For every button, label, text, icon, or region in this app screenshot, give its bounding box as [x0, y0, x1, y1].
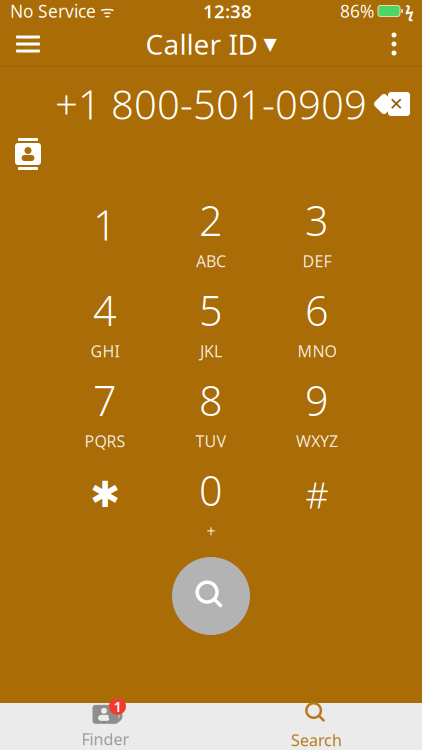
staticText: Finder [81, 728, 129, 750]
staticText: ✕ [389, 94, 404, 114]
button[interactable]: Contacts [0, 131, 56, 177]
button[interactable]: 1 [45, 703, 165, 750]
button[interactable]: 8 [158, 381, 264, 443]
staticText: Caller ID [145, 25, 257, 63]
staticText: No Service [10, 0, 96, 22]
staticText: 1 [93, 197, 117, 252]
staticText: 9 [305, 372, 329, 427]
button[interactable]: Search number [166, 551, 256, 641]
staticText: JKL [200, 340, 222, 361]
staticText: 7 [93, 372, 117, 427]
staticText: # [305, 471, 328, 518]
staticText: 0 [199, 462, 223, 517]
staticText: ▼ [263, 34, 276, 54]
staticText: PQRS [84, 430, 125, 451]
staticText: Search [291, 729, 342, 750]
button[interactable]: 7 [52, 381, 158, 443]
staticText: WXYZ [296, 430, 338, 451]
button[interactable]: Delete [366, 81, 422, 127]
staticText: DEF [302, 250, 331, 271]
button[interactable]: 4 [52, 291, 158, 353]
staticText: + [206, 520, 215, 541]
button[interactable]: 1 [52, 201, 158, 263]
staticText: +1 800-501-0909 [55, 77, 367, 130]
button[interactable]: Search [256, 703, 376, 750]
staticText: 86% [340, 0, 374, 22]
staticText: ᯤ [96, 0, 115, 22]
staticText: 2 [199, 192, 223, 247]
staticText: MNO [297, 340, 336, 361]
button[interactable]: 3 [264, 201, 370, 263]
button[interactable]: Caller ID [135, 22, 286, 66]
staticText: 4 [93, 282, 117, 337]
staticText: 8 [199, 372, 223, 427]
staticText: 1 [113, 697, 121, 716]
staticText: TUV [195, 430, 226, 451]
button[interactable]: More options [366, 22, 422, 66]
staticText: 3 [305, 192, 329, 247]
staticText: ABC [196, 250, 226, 271]
staticText: 5 [199, 282, 223, 337]
staticText: ϟ [405, 0, 414, 22]
button[interactable]: 0 [158, 471, 264, 533]
button[interactable]: 9 [264, 381, 370, 443]
button[interactable]: ✱ [52, 471, 158, 533]
staticText: ✱ [90, 474, 120, 515]
staticText: GHI [90, 340, 119, 361]
button[interactable]: # [264, 471, 370, 533]
button[interactable]: 2 [158, 201, 264, 263]
button[interactable]: 5 [158, 291, 264, 353]
button[interactable]: Menu [0, 22, 56, 66]
staticText: 12:38 [203, 0, 252, 23]
staticText: 6 [305, 282, 329, 337]
button[interactable]: 6 [264, 291, 370, 353]
